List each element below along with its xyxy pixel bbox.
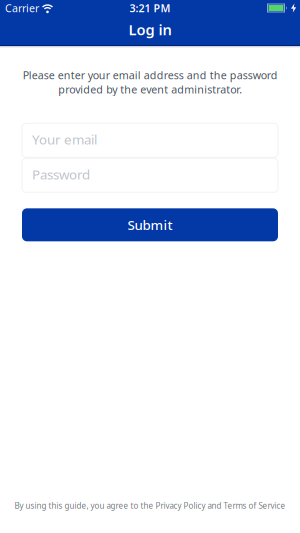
staticText: Carrier — [5, 1, 39, 15]
staticText: Your email — [32, 130, 97, 148]
button[interactable]: Password — [22, 158, 278, 192]
button[interactable]: Submit — [22, 208, 278, 241]
staticText: By using this guide, you agree to the Pr… — [14, 500, 285, 511]
button[interactable]: By using this guide, you agree to the Pr… — [14, 500, 285, 511]
staticText: Password — [32, 165, 90, 183]
staticText: 3:21 PM — [129, 1, 170, 15]
staticText: Log in — [128, 20, 171, 39]
button[interactable]: Your email — [22, 123, 278, 157]
staticText: Submit — [127, 216, 172, 234]
staticText: Please enter your email address and the … — [22, 68, 277, 96]
